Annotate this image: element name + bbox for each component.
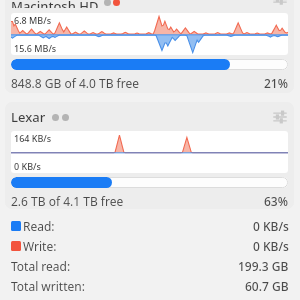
- staticText: 21%: [264, 75, 288, 91]
- button[interactable]: Settings: [272, 109, 288, 125]
- staticText: 2.6 TB of 4.1 TB free: [11, 193, 124, 209]
- staticText: Read:: [23, 218, 55, 234]
- button[interactable]: Total read:: [11, 256, 289, 276]
- button[interactable]: Lexar: [5, 102, 294, 209]
- staticText: Total written:: [11, 278, 85, 294]
- button[interactable]: [11, 59, 288, 70]
- staticText: 848.8 GB of 4.0 TB free: [11, 75, 139, 91]
- staticText: 15.6 MB/s: [14, 42, 57, 54]
- staticText: Lexar: [11, 108, 46, 126]
- staticText: Macintosh HD: [11, 0, 99, 8]
- staticText: 0 KB/s: [253, 218, 289, 234]
- staticText: Total read:: [11, 258, 71, 274]
- staticText: 0 KB/s: [253, 238, 289, 254]
- staticText: 60.7 GB: [245, 278, 289, 294]
- staticText: 0 KB/s: [14, 160, 41, 172]
- button[interactable]: Total written:: [11, 276, 289, 296]
- staticText: 164 KB/s: [14, 132, 52, 144]
- staticText: 63%: [264, 193, 288, 209]
- button[interactable]: Settings: [272, 0, 288, 5]
- button[interactable]: [11, 177, 288, 188]
- staticText: 199.3 GB: [238, 258, 289, 274]
- staticText: 6.8 MB/s: [14, 14, 52, 26]
- staticText: Write:: [23, 238, 57, 254]
- button[interactable]: Write:: [11, 236, 289, 256]
- button[interactable]: Macintosh HD: [5, 0, 294, 93]
- button[interactable]: Read:: [11, 216, 289, 236]
